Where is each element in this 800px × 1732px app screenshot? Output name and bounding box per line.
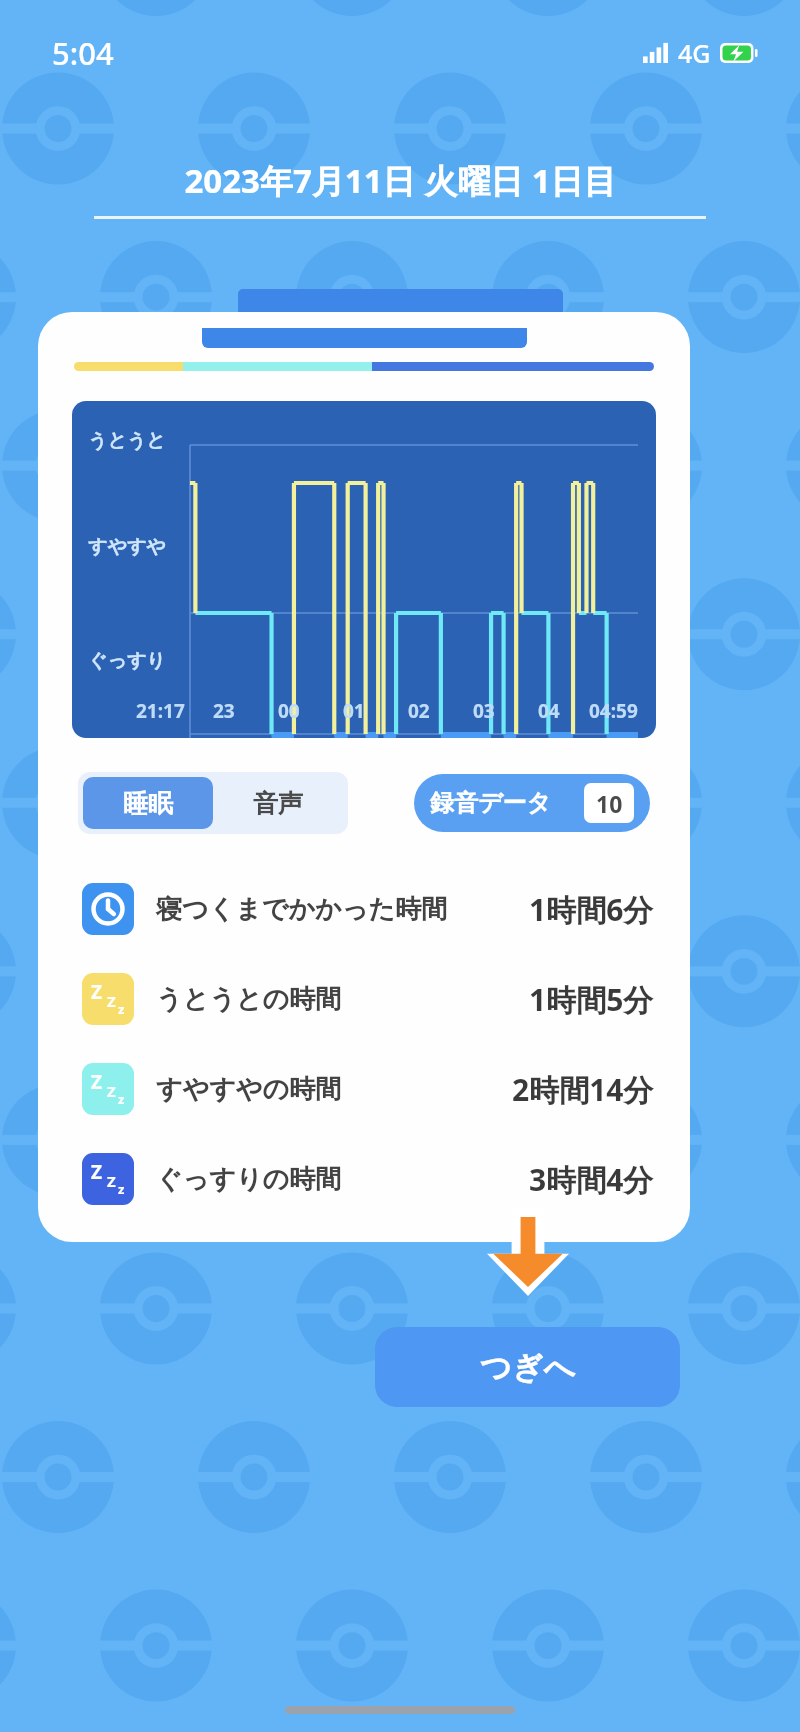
staticText: 録音データ xyxy=(430,788,552,818)
staticText: z xyxy=(118,1000,125,1018)
staticText: 1時間5分 xyxy=(529,979,654,1020)
staticText: 00 xyxy=(278,698,300,724)
staticText: 2023年7月11日 火曜日 1日目 xyxy=(184,158,617,203)
staticText: 23 xyxy=(213,698,235,724)
staticText: z xyxy=(118,1180,125,1198)
button[interactable]: 寝つくまでかかった時間 xyxy=(38,864,690,954)
staticText: 04:59 xyxy=(589,698,638,724)
staticText: Z xyxy=(91,1159,103,1185)
staticText: z xyxy=(118,1090,125,1108)
staticText: Z xyxy=(91,1069,103,1095)
staticText: 4G xyxy=(678,36,711,70)
staticText: 2時間14分 xyxy=(512,1069,654,1110)
staticText: 01 xyxy=(343,698,365,724)
staticText: Z xyxy=(107,1081,116,1101)
staticText: 1時間6分 xyxy=(529,889,654,930)
button[interactable]: Z xyxy=(38,954,690,1044)
staticText: 5:04 xyxy=(52,32,114,74)
staticText: 03 xyxy=(473,698,495,724)
button[interactable]: Z xyxy=(38,1134,690,1224)
staticText: 音声 xyxy=(253,788,303,819)
staticText: Z xyxy=(91,979,103,1005)
button[interactable]: つぎへ xyxy=(375,1327,680,1407)
button[interactable]: Z xyxy=(38,1044,690,1134)
staticText: すやすやの時間 xyxy=(156,1073,342,1106)
staticText: 04 xyxy=(538,698,560,724)
staticText: 寝つくまでかかった時間 xyxy=(156,893,447,926)
staticText: 21:17 xyxy=(136,698,185,724)
staticText: 3時間4分 xyxy=(529,1159,654,1200)
staticText: 睡眠 xyxy=(123,788,173,819)
staticText: すやすや xyxy=(88,535,166,559)
staticText: 02 xyxy=(408,698,430,724)
staticText: ぐっすりの時間 xyxy=(156,1163,342,1196)
button[interactable]: Scroll down xyxy=(487,1208,569,1296)
staticText: 10 xyxy=(596,788,623,819)
staticText: うとうとの時間 xyxy=(156,983,342,1016)
staticText: Z xyxy=(107,1171,116,1191)
button[interactable]: 録音データ xyxy=(414,774,650,832)
staticText: ぐっすり xyxy=(88,649,166,673)
staticText: Z xyxy=(107,991,116,1011)
button[interactable]: 睡眠 xyxy=(83,777,213,829)
staticText: うとうと xyxy=(88,429,166,453)
button[interactable]: 音声 xyxy=(213,777,343,829)
staticText: つぎへ xyxy=(480,1348,576,1387)
